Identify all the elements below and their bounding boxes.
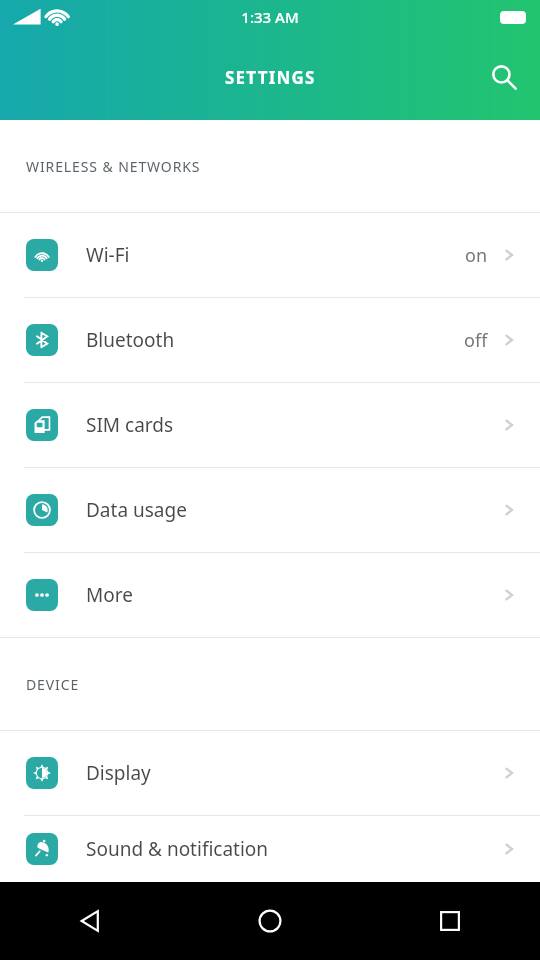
button[interactable]: Bluetooth xyxy=(0,298,540,382)
button[interactable]: Sound & notification xyxy=(0,816,540,882)
staticText: SIM cards xyxy=(86,412,498,438)
staticText: 1:33 AM xyxy=(241,7,299,27)
staticText: Display xyxy=(86,760,498,786)
button[interactable]: Search xyxy=(480,53,528,101)
button[interactable]: Recent apps xyxy=(360,882,540,960)
staticText: off xyxy=(464,328,488,353)
button[interactable]: Home xyxy=(180,882,360,960)
button[interactable]: More xyxy=(0,553,540,637)
staticText: Wi-Fi xyxy=(86,242,465,268)
staticText: DEVICE xyxy=(26,675,80,694)
staticText: Sound & notification xyxy=(86,836,498,862)
button[interactable]: SIM cards xyxy=(0,383,540,467)
button[interactable]: Wi-Fi xyxy=(0,213,540,297)
button[interactable]: Display xyxy=(0,731,540,815)
staticText: on xyxy=(465,243,488,268)
staticText: SETTINGS xyxy=(225,66,316,89)
staticText: WIRELESS & NETWORKS xyxy=(26,157,201,176)
staticText: More xyxy=(86,582,498,608)
button[interactable]: Data usage xyxy=(0,468,540,552)
button[interactable]: Back xyxy=(0,882,180,960)
staticText: Data usage xyxy=(86,497,498,523)
staticText: Bluetooth xyxy=(86,327,464,353)
